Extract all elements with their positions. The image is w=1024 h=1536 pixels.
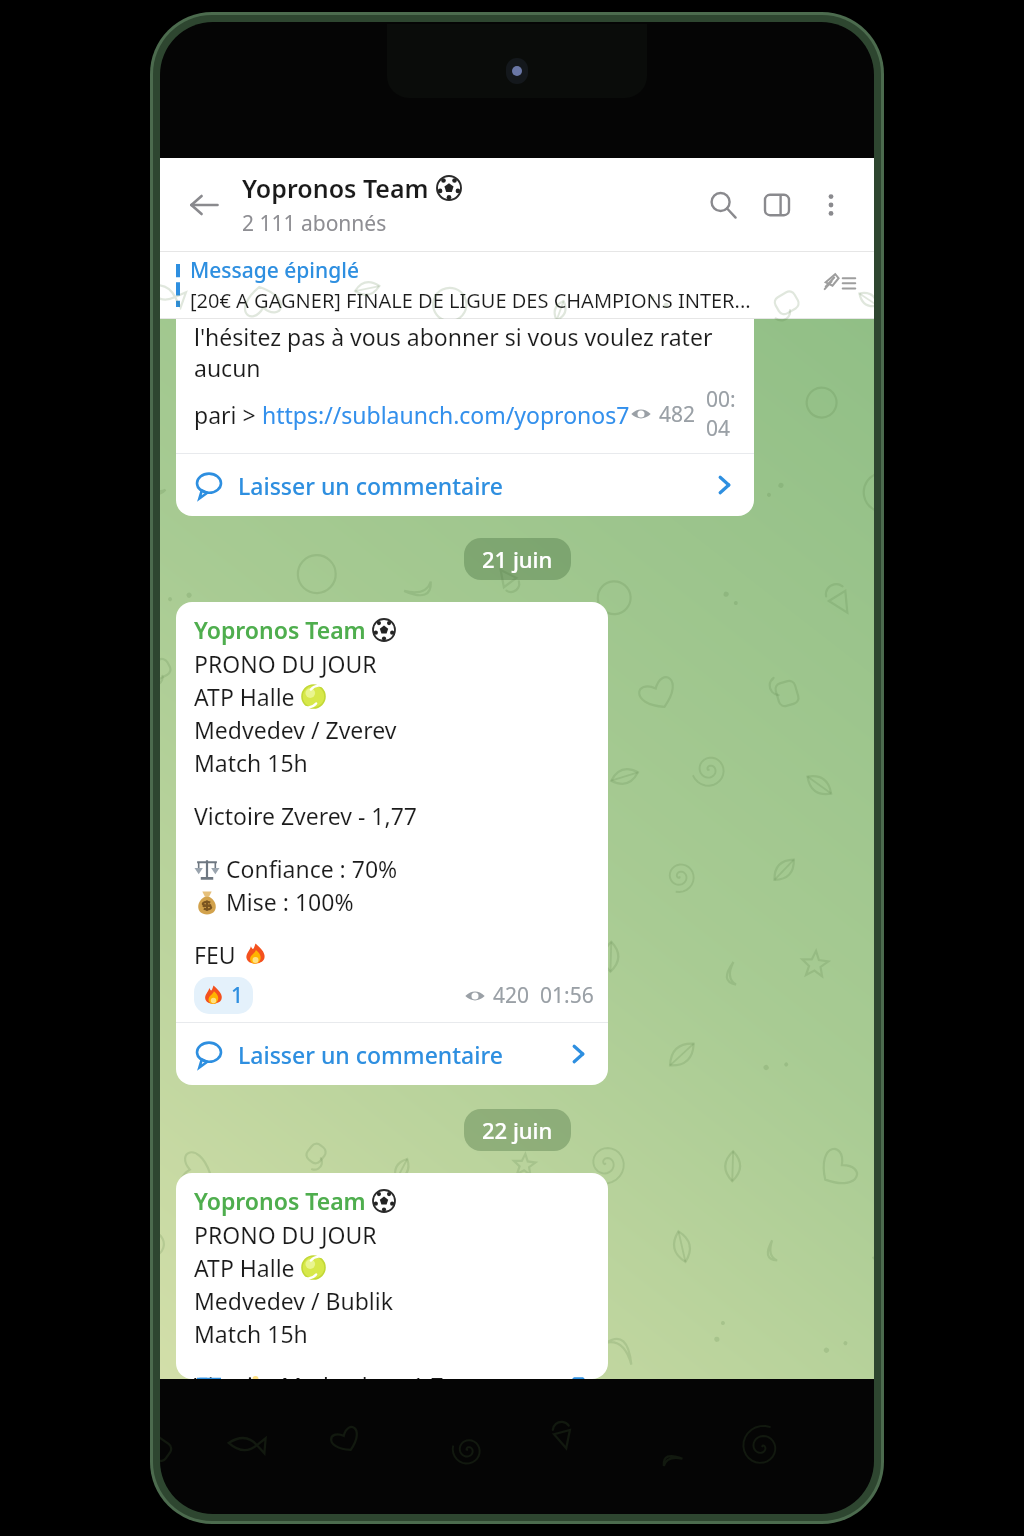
button[interactable]: Laisser un commentaire [176,454,754,516]
staticText: Laisser un commentaire [238,1039,503,1070]
staticText: Match 15h [194,1318,308,1349]
staticText: 1 [231,981,244,1010]
staticText: PRONO DU JOUR [194,1219,377,1250]
staticText: Yopronos Team [242,171,429,205]
button[interactable]: More options [804,178,858,232]
button[interactable]: Yopronos Team [176,602,608,1085]
staticText: Yopronos Team [194,614,366,645]
staticText: PRONO DU JOUR [194,648,377,679]
staticText: Mise : 100% [226,886,354,917]
button[interactable]: Pinned messages list [814,258,868,312]
staticText: 01:56 [540,981,594,1010]
button[interactable]: Search [696,178,750,232]
staticText: Confiance : 70% [226,853,398,884]
button[interactable]: Sidebar [750,178,804,232]
button[interactable]: Message épinglé [160,252,874,318]
staticText: 21 juin [482,544,553,574]
staticText: Laisser un commentaire [238,470,503,501]
button[interactable]: 1 [194,977,253,1014]
button[interactable]: 22 juin [464,1109,571,1151]
staticText: Victoire Zverev - 1,77 [194,800,417,831]
staticText: Medvedev / Bublik [194,1285,393,1316]
staticText: FEU [194,939,236,970]
button[interactable]: Laisser un commentaire [176,1023,608,1085]
staticText: 420 [493,981,530,1010]
staticText: 2 111 abonnés [242,209,387,238]
staticText: ATP Halle [194,1252,295,1283]
button[interactable]: Yopronos Team [242,171,696,238]
button[interactable]: 21 juin [464,538,571,580]
staticText: Match 15h [194,747,308,778]
staticText: [20€ A GAGNER] FINALE DE LIGUE DES CHAMP… [190,287,751,314]
staticText: Message épinglé [190,256,359,285]
staticText: ATP Halle [194,681,295,712]
staticText: l'hésitez pas à vous abonner si vous vou… [194,321,738,383]
staticText: 00:04 [706,385,738,443]
staticText: Medvedev / Zverev [194,714,397,745]
button[interactable]: Yopronos Team [176,1173,608,1379]
staticText: Victoire Medvedev - 1,7 [194,1370,444,1379]
staticText: Yopronos Team [194,1185,366,1216]
button[interactable]: Back [178,179,230,231]
staticText: 482 [659,400,696,429]
staticText: https://sublaunch.com/yopronos7 [262,399,630,430]
staticText: pari > [194,399,262,430]
staticText: 22 juin [482,1115,553,1145]
